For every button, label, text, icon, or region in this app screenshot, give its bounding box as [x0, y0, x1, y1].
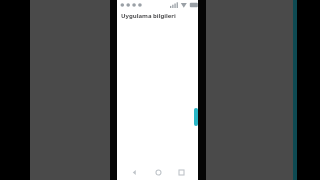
- staticText: Uygulama bilgileri: [121, 12, 176, 20]
- button[interactable]: Back: [127, 165, 141, 179]
- button[interactable]: Recents: [174, 165, 188, 179]
- button[interactable]: Home: [151, 165, 165, 179]
